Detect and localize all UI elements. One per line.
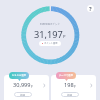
staticText: 30,999: [13, 81, 31, 89]
staticText: P: [31, 85, 33, 89]
staticText: ポイント履歴: [44, 42, 58, 45]
staticText: テーマで運用: [59, 74, 73, 77]
staticText: 詳細: [67, 93, 73, 96]
staticText: 詳細: [20, 93, 26, 96]
button[interactable]: 30,999: [4, 75, 49, 100]
staticText: P: [74, 85, 76, 89]
staticText: 利用可能ポイント: [40, 23, 61, 26]
button[interactable]: Help: [87, 5, 94, 12]
staticText: おまかせ運用: [12, 74, 26, 77]
staticText: P: [63, 34, 66, 40]
button[interactable]: ポイント履歴: [39, 41, 61, 46]
button[interactable]: 198: [51, 75, 96, 100]
staticText: 31,197: [34, 28, 63, 41]
staticText: ?: [89, 5, 92, 12]
staticText: 198: [64, 81, 74, 89]
